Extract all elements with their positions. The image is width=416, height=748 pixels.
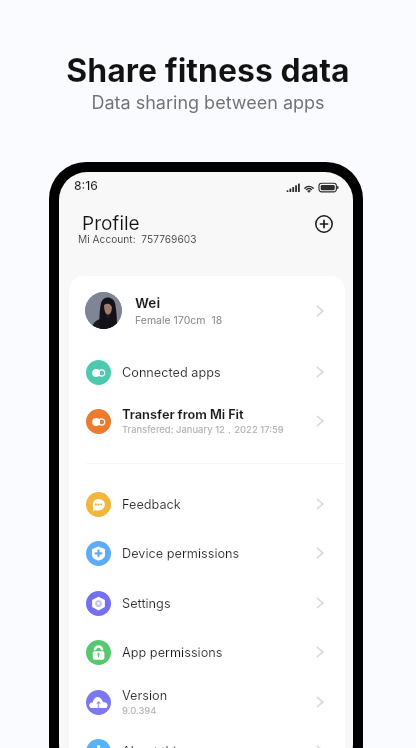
staticText: 9.0.394 — [122, 705, 157, 716]
button[interactable]: Version — [69, 677, 345, 727]
button[interactable]: Connected apps — [69, 347, 345, 397]
staticText: Connected apps — [122, 365, 221, 380]
button[interactable]: Wei — [69, 276, 345, 345]
staticText: Mi Account: 757769603 — [78, 233, 197, 245]
staticText: Share fitness data — [66, 51, 350, 90]
staticText: Transfer from Mi Fit — [122, 407, 244, 422]
staticText: Version — [122, 688, 168, 703]
button[interactable]: Transfer from Mi Fit — [69, 396, 345, 446]
button[interactable]: Settings — [69, 578, 345, 628]
staticText: Feedback — [122, 497, 181, 512]
staticText: Settings — [122, 596, 171, 611]
staticText: Data sharing between apps — [91, 92, 325, 114]
staticText: Wei — [135, 295, 161, 311]
button[interactable]: Feedback — [69, 479, 345, 529]
button[interactable]: About this app — [69, 726, 345, 748]
staticText: Female 170cm 18 — [135, 314, 223, 327]
button[interactable]: Add account — [309, 209, 339, 239]
staticText: App permissions — [122, 645, 223, 660]
staticText: Device permissions — [122, 546, 240, 561]
button[interactable]: Device permissions — [69, 528, 345, 578]
staticText: 8:16 — [74, 178, 98, 193]
staticText: About this app — [122, 744, 210, 748]
staticText: Profile — [82, 212, 140, 235]
button[interactable]: App permissions — [69, 627, 345, 677]
staticText: Transfered: January 12，2022 17:59 — [122, 424, 284, 436]
